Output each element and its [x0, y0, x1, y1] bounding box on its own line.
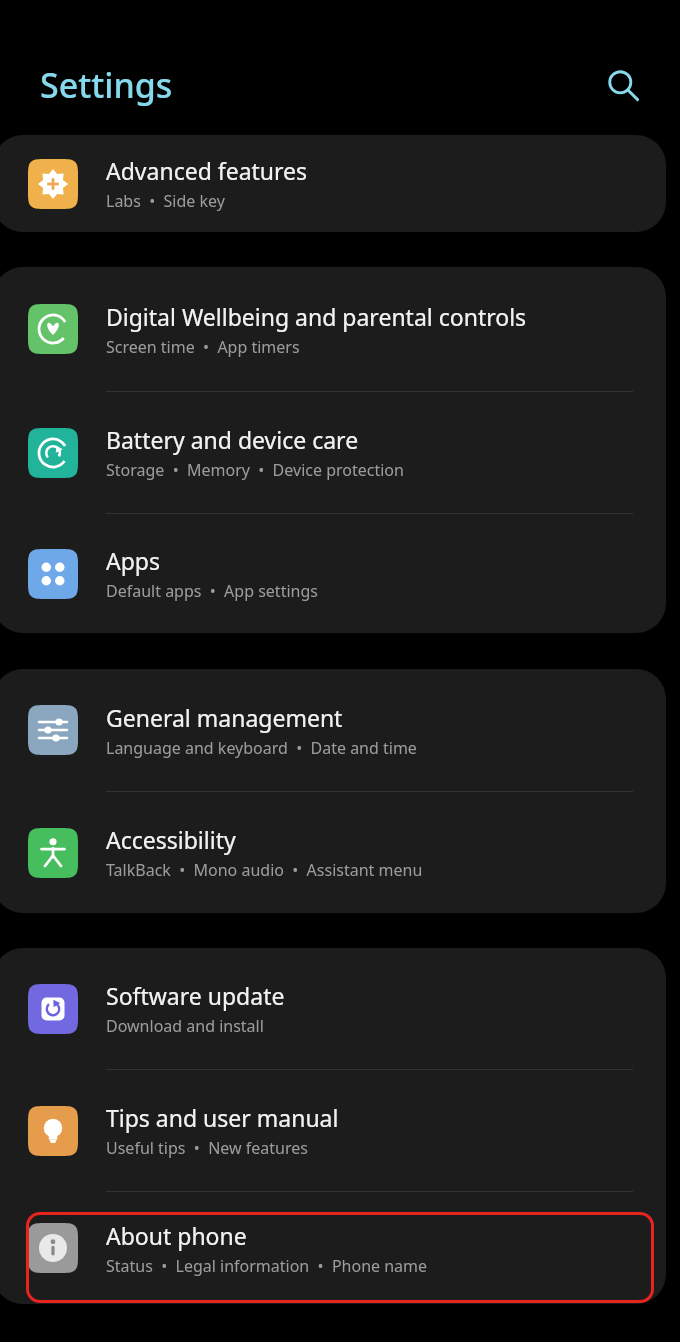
staticText: Tips and user manual: [106, 1102, 339, 1133]
staticText: General management: [106, 702, 343, 733]
staticText: Screen time • App timers: [106, 336, 300, 358]
staticText: Default apps • App settings: [106, 580, 318, 602]
button[interactable]: Accessibility: [0, 792, 666, 913]
staticText: Accessibility: [106, 824, 236, 855]
button[interactable]: Search: [592, 54, 654, 116]
staticText: Software update: [106, 980, 285, 1011]
staticText: Labs • Side key: [106, 190, 225, 212]
staticText: Useful tips • New features: [106, 1137, 308, 1159]
button[interactable]: Software update: [0, 948, 666, 1069]
staticText: Digital Wellbeing and parental controls: [106, 301, 527, 332]
staticText: Language and keyboard • Date and time: [106, 737, 417, 759]
button[interactable]: About phone: [0, 1192, 666, 1304]
staticText: Battery and device care: [106, 424, 359, 455]
button[interactable]: Tips and user manual: [0, 1070, 666, 1191]
staticText: Storage • Memory • Device protection: [106, 459, 404, 481]
staticText: Status • Legal information • Phone name: [106, 1255, 428, 1277]
button[interactable]: Digital Wellbeing and parental controls: [0, 267, 666, 391]
button[interactable]: Battery and device care: [0, 392, 666, 513]
staticText: Download and install: [106, 1015, 264, 1037]
staticText: Advanced features: [106, 155, 308, 186]
button[interactable]: General management: [0, 669, 666, 791]
staticText: TalkBack • Mono audio • Assistant menu: [106, 859, 423, 881]
staticText: About phone: [106, 1220, 247, 1251]
button[interactable]: Apps: [0, 514, 666, 633]
staticText: Settings: [40, 62, 173, 108]
button[interactable]: Advanced features: [0, 135, 666, 232]
staticText: Apps: [106, 545, 161, 576]
